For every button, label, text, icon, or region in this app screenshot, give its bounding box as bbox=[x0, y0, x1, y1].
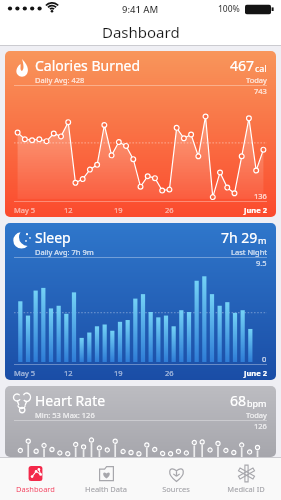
button[interactable]: Medical ID bbox=[211, 458, 281, 500]
staticText: bpm bbox=[247, 397, 267, 409]
staticText: 126 bbox=[254, 421, 267, 431]
staticText: cal bbox=[255, 62, 267, 74]
staticText: Medical ID bbox=[227, 484, 265, 494]
staticText: 467 bbox=[230, 56, 255, 75]
staticText: m bbox=[258, 234, 267, 246]
staticText: Today bbox=[246, 410, 267, 420]
button[interactable]: Sleep bbox=[5, 223, 276, 380]
staticText: 9:41 AM bbox=[122, 3, 159, 16]
staticText: 100% bbox=[218, 3, 240, 15]
staticText: May 5 bbox=[14, 368, 36, 378]
staticText: Daily Avg: 428 bbox=[35, 75, 85, 85]
button[interactable]: Health Data bbox=[71, 458, 141, 500]
staticText: 743 bbox=[254, 86, 267, 96]
staticText: 7h 29 bbox=[221, 228, 258, 247]
staticText: June 2 bbox=[244, 368, 267, 378]
staticText: 12 bbox=[64, 205, 73, 215]
staticText: Heart Rate bbox=[35, 391, 106, 410]
staticText: 12 bbox=[64, 368, 73, 378]
staticText: Today bbox=[246, 75, 267, 85]
staticText: May 5 bbox=[14, 205, 36, 215]
staticText: Daily Avg: 7h 9m bbox=[35, 247, 94, 257]
staticText: 19 bbox=[114, 205, 123, 215]
staticText: 9.5 bbox=[256, 258, 267, 268]
staticText: Health Data bbox=[85, 484, 127, 494]
staticText: 26 bbox=[165, 205, 174, 215]
button[interactable]: Heart Rate bbox=[5, 386, 276, 457]
staticText: Min: 53 Max: 126 bbox=[35, 410, 95, 420]
button[interactable]: Calories Burned bbox=[5, 51, 276, 217]
button[interactable]: Dashboard bbox=[0, 458, 71, 500]
staticText: 136 bbox=[254, 191, 267, 201]
staticText: 26 bbox=[165, 368, 174, 378]
staticText: Last Night bbox=[231, 247, 267, 257]
staticText: 0 bbox=[262, 354, 267, 364]
staticText: Sources bbox=[162, 484, 190, 494]
staticText: Sleep bbox=[35, 228, 71, 247]
staticText: Dashboard bbox=[16, 484, 55, 494]
staticText: 68 bbox=[230, 391, 247, 410]
staticText: June 2 bbox=[244, 205, 267, 215]
staticText: Dashboard bbox=[102, 22, 180, 42]
staticText: 19 bbox=[114, 368, 123, 378]
button[interactable]: Sources bbox=[141, 458, 211, 500]
staticText: Calories Burned bbox=[35, 56, 141, 75]
